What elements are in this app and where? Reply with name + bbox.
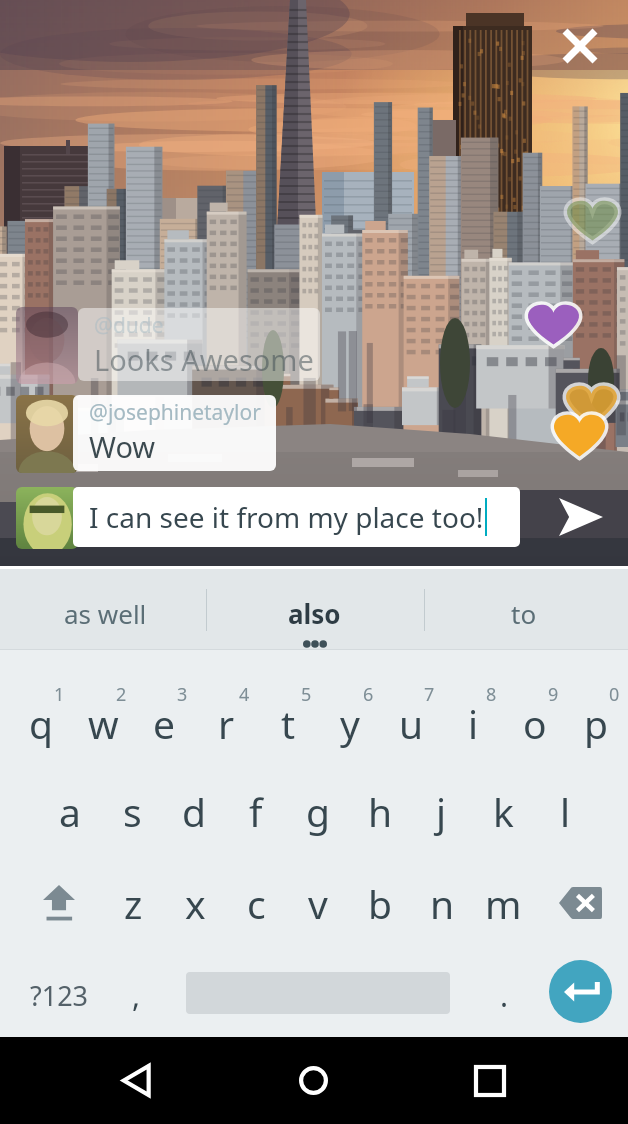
button[interactable]: Send <box>545 487 617 547</box>
staticText: to <box>511 596 537 631</box>
button[interactable]: ?123 <box>8 951 110 1039</box>
button[interactable]: g <box>287 767 349 855</box>
staticText: 5 <box>301 682 312 706</box>
staticText: also <box>288 596 341 631</box>
staticText: d <box>182 785 206 838</box>
staticText: 1 <box>54 682 65 706</box>
staticText: r <box>218 697 235 750</box>
staticText: g <box>306 785 330 838</box>
staticText: k <box>493 785 514 838</box>
button[interactable]: j <box>410 767 472 855</box>
staticText: c <box>247 877 266 930</box>
button[interactable]: Back <box>92 1037 180 1124</box>
button[interactable]: t <box>257 679 319 767</box>
button[interactable]: Recent apps <box>446 1037 534 1124</box>
staticText: Looks Awesome <box>94 340 314 379</box>
button[interactable]: i <box>442 679 504 767</box>
staticText: h <box>368 785 393 838</box>
button[interactable]: w <box>72 679 134 767</box>
button[interactable]: s <box>101 767 163 855</box>
staticText: 7 <box>424 682 435 706</box>
button[interactable]: Avatar <box>16 307 78 384</box>
staticText: 9 <box>548 682 559 706</box>
button[interactable]: , <box>108 951 164 1039</box>
button[interactable]: l <box>534 767 596 855</box>
staticText: e <box>153 697 175 750</box>
staticText: . <box>500 975 509 1016</box>
staticText: q <box>29 697 53 750</box>
button[interactable]: @josephinetaylor <box>73 395 276 471</box>
staticText: a <box>59 785 81 838</box>
button[interactable]: . <box>476 951 532 1039</box>
staticText: p <box>584 697 608 750</box>
button[interactable]: d <box>163 767 225 855</box>
staticText: 3 <box>177 682 188 706</box>
button[interactable]: Avatar <box>16 395 78 473</box>
staticText: w <box>88 697 119 750</box>
button[interactable]: v <box>287 859 349 947</box>
staticText: x <box>185 877 206 930</box>
button[interactable]: z <box>102 859 164 947</box>
staticText: z <box>124 877 143 930</box>
staticText: Wow <box>89 427 156 466</box>
button[interactable]: also <box>210 569 419 649</box>
staticText: 8 <box>486 682 497 706</box>
button[interactable]: Shift <box>13 859 105 947</box>
button[interactable]: x <box>164 859 226 947</box>
button[interactable]: Home <box>269 1037 357 1124</box>
staticText: t <box>281 697 296 750</box>
staticText: l <box>560 785 571 838</box>
staticText: I can see it from my place too! <box>89 498 484 536</box>
staticText: @dude <box>94 311 164 340</box>
button[interactable]: as well <box>0 569 210 649</box>
button[interactable]: q <box>10 679 72 767</box>
staticText: s <box>123 785 142 838</box>
staticText: , <box>132 975 141 1016</box>
staticText: as well <box>64 596 147 631</box>
button[interactable]: c <box>225 859 287 947</box>
button[interactable]: Close <box>550 16 610 76</box>
button[interactable]: h <box>349 767 411 855</box>
staticText: @josephinetaylor <box>89 398 261 427</box>
staticText: ?123 <box>30 977 89 1014</box>
button[interactable]: p <box>565 679 627 767</box>
staticText: m <box>485 877 522 930</box>
staticText: i <box>468 697 479 750</box>
button[interactable]: k <box>472 767 534 855</box>
staticText: j <box>436 785 447 838</box>
button[interactable]: Your avatar <box>16 487 78 549</box>
button[interactable]: I can see it from my place too! <box>73 487 520 547</box>
button[interactable]: Backspace <box>534 859 626 947</box>
button[interactable]: o <box>504 679 566 767</box>
staticText: o <box>523 697 547 750</box>
staticText: u <box>399 697 424 750</box>
button[interactable]: m <box>472 859 534 947</box>
button[interactable]: e <box>133 679 195 767</box>
button[interactable]: to <box>419 569 628 649</box>
button[interactable]: f <box>225 767 287 855</box>
button[interactable]: Enter <box>549 960 612 1023</box>
staticText: y <box>340 697 360 750</box>
staticText: 6 <box>363 682 374 706</box>
staticText: n <box>430 877 455 930</box>
staticText: 0 <box>609 682 620 706</box>
staticText: 2 <box>116 682 127 706</box>
staticText: b <box>368 877 392 930</box>
button[interactable]: n <box>411 859 473 947</box>
button[interactable]: a <box>39 767 101 855</box>
button[interactable]: y <box>319 679 381 767</box>
button[interactable]: r <box>195 679 257 767</box>
staticText: 4 <box>239 682 250 706</box>
button[interactable]: @dude <box>78 308 320 381</box>
staticText: f <box>249 785 263 838</box>
staticText: v <box>308 877 328 930</box>
button[interactable]: u <box>380 679 442 767</box>
button[interactable]: b <box>349 859 411 947</box>
